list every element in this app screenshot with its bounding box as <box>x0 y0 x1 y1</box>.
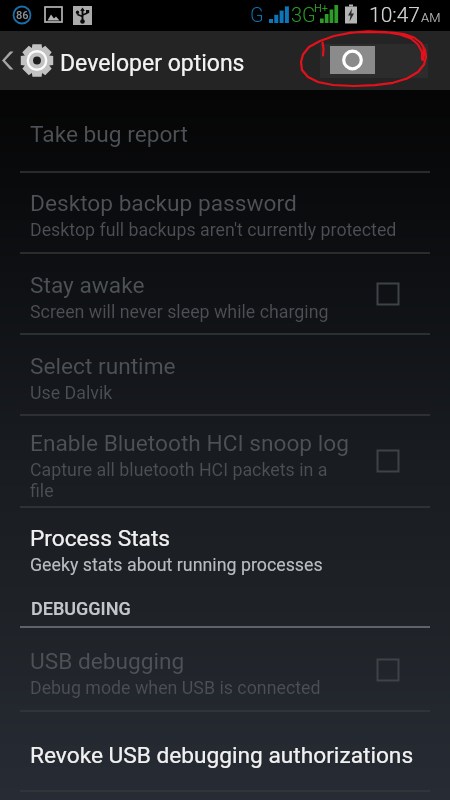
staticText: Use Dalvik <box>30 382 113 403</box>
button[interactable]: Select runtime <box>0 353 450 403</box>
button[interactable]: Navigate up <box>0 31 56 90</box>
button[interactable]: Stay awake <box>0 272 450 322</box>
staticText: AM <box>421 10 441 25</box>
button[interactable]: USB debugging <box>0 648 450 698</box>
button[interactable]: Toggle developer options on or off <box>320 44 428 78</box>
button[interactable]: Revoke USB debugging authorizations <box>0 742 450 769</box>
staticText: Revoke USB debugging authorizations <box>30 742 414 769</box>
staticText: 86 <box>16 9 29 22</box>
staticText: Capture all bluetooth HCI packets in a f… <box>30 459 328 501</box>
button[interactable]: Take bug report <box>0 121 450 148</box>
button[interactable]: Enable Bluetooth HCI snoop log <box>0 430 450 501</box>
staticText: Screen will never sleep while charging <box>30 301 329 322</box>
staticText: H+ <box>314 2 329 15</box>
staticText: Take bug report <box>30 121 189 148</box>
staticText: Desktop backup password <box>30 190 297 217</box>
staticText: Stay awake <box>30 272 145 299</box>
staticText: 10:47 <box>369 3 421 28</box>
staticText: Developer options <box>60 50 245 77</box>
staticText: DEBUGGING <box>31 598 131 619</box>
staticText: Desktop full backups aren't currently pr… <box>30 219 397 240</box>
staticText: Enable Bluetooth HCI snoop log <box>30 430 349 457</box>
button[interactable]: Desktop backup password <box>0 190 450 240</box>
staticText: USB debugging <box>30 648 185 675</box>
staticText: 3G <box>291 3 316 26</box>
staticText: Select runtime <box>30 353 176 380</box>
staticText: Process Stats <box>30 525 171 552</box>
staticText: Debug mode when USB is connected <box>30 677 321 698</box>
button[interactable]: Process Stats <box>0 525 450 575</box>
staticText: Geeky stats about running processes <box>30 554 323 575</box>
staticText: G <box>250 3 264 26</box>
